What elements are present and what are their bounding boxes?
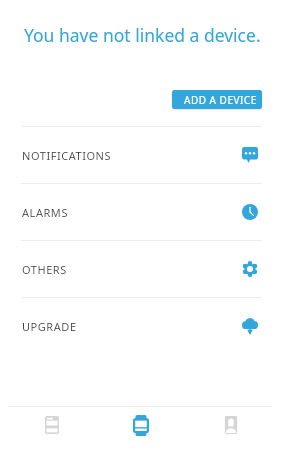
staticText: OTHERS [22,262,67,277]
button[interactable]: UPGRADE [0,298,290,354]
button[interactable]: OTHERS [0,241,290,297]
button[interactable]: ADD A DEVICE [172,90,262,109]
button[interactable]: ALARMS [0,184,290,240]
staticText: ADD A DEVICE [184,93,257,107]
button[interactable]: Devices list [7,407,96,443]
staticText: UPGRADE [22,319,77,334]
button[interactable]: Watch [96,407,186,443]
staticText: You have not linked a device. [24,23,261,47]
staticText: ALARMS [22,205,68,220]
staticText: NOTIFICATIONS [22,148,112,163]
button[interactable]: NOTIFICATIONS [0,127,290,183]
button[interactable]: Account [186,407,276,443]
